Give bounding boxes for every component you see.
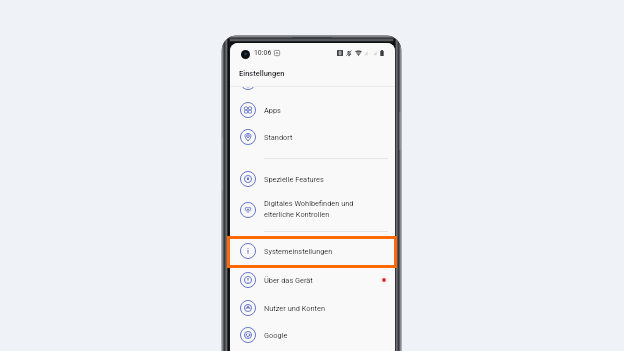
- button[interactable]: Google: [230, 321, 395, 349]
- button[interactable]: Nutzer und Konten: [230, 294, 395, 322]
- staticText: Digitales Wohlbefinden und: [264, 199, 354, 208]
- staticText: Einstellungen: [239, 69, 285, 78]
- staticText: Nutzer und Konten: [264, 304, 326, 313]
- staticText: Über das Gerät: [264, 276, 313, 285]
- staticText: Spezielle Features: [264, 175, 324, 184]
- button[interactable]: Digitales Wohlbefinden und: [230, 193, 395, 227]
- staticText: Systemeinstellungen: [264, 247, 333, 256]
- button[interactable]: Apps: [230, 96, 395, 124]
- staticText: elterliche Kontrollen: [264, 210, 330, 219]
- button[interactable]: Standort: [230, 123, 395, 151]
- button[interactable]: Über das Gerät: [230, 266, 395, 294]
- staticText: Apps: [264, 106, 281, 115]
- button[interactable]: Systemeinstellungen: [230, 237, 395, 265]
- staticText: 10:06: [254, 49, 272, 57]
- staticText: Standort: [264, 133, 293, 142]
- staticText: Google: [264, 331, 288, 340]
- button[interactable]: Spezielle Features: [230, 165, 395, 193]
